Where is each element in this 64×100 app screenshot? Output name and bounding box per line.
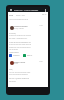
staticText: Hi Charlie,	[9, 32, 16, 34]
button[interactable]: Notes.doc	[9, 54, 20, 57]
staticText: Account Management Setup	[9, 18, 29, 20]
button[interactable]: Data.xls	[23, 54, 33, 57]
button[interactable]	[8, 24, 48, 31]
staticText: Thanks for sending over the files	[9, 34, 32, 36]
button[interactable]	[8, 60, 48, 67]
staticText: Rebecca Stone	[14, 61, 26, 63]
staticText: I think we should schedule a call	[9, 41, 31, 43]
staticText: Setup + Sync	[16, 14, 25, 16]
staticText: see below.	[9, 80, 17, 82]
button[interactable]: More options	[43, 8, 47, 12]
button[interactable]: Back	[9, 8, 13, 12]
staticText: 12:05	[39, 61, 43, 63]
staticText: 2 attachments	[9, 51, 19, 53]
staticText: Inbox	[9, 14, 14, 16]
staticText: Hello,	[9, 68, 13, 70]
staticText: You can find the attached notes	[9, 71, 31, 73]
staticText: to discuss the next steps and the	[9, 43, 32, 45]
staticText: last week. I reviewed them.	[9, 37, 28, 39]
staticText: Data.xls	[27, 55, 33, 57]
staticText: to me, Andrew	[14, 28, 24, 30]
staticText: Let me know.	[9, 48, 18, 50]
staticText: Matthew Williams	[14, 25, 28, 27]
staticText: 11:42	[39, 25, 43, 27]
staticText: Notes.doc	[13, 55, 20, 57]
staticText: Dec 12	[42, 14, 47, 16]
staticText: from the meeting yesterday.	[9, 73, 29, 75]
staticText: timeline for the remaining work.	[9, 46, 31, 48]
staticText: Gmail.com - Account Manager	[14, 9, 39, 11]
staticText: to me	[14, 63, 18, 65]
staticText: For the 17 January update call	[9, 77, 30, 79]
